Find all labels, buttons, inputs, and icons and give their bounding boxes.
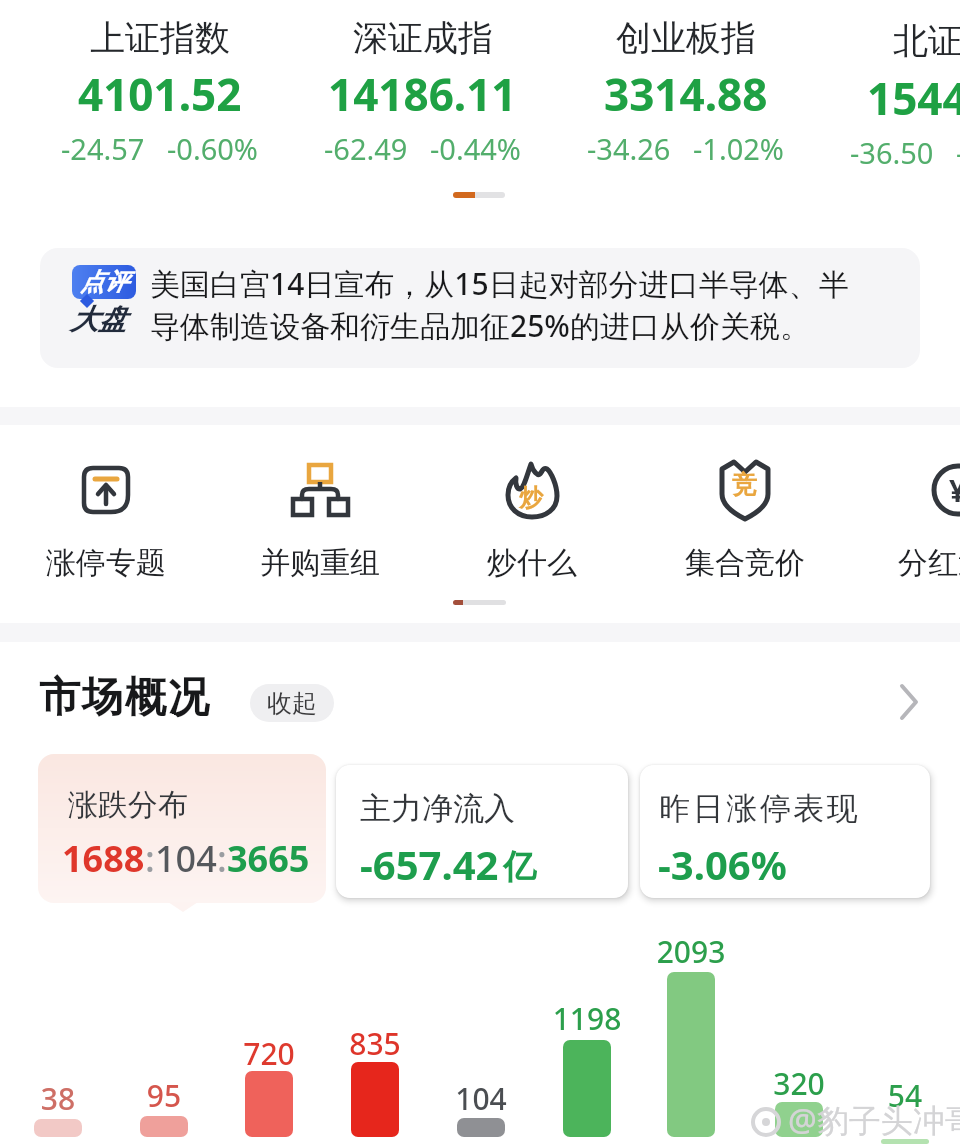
staticText: 炒什么 [487,544,577,582]
staticText: -0.60% [167,129,258,168]
button[interactable]: 点评 [40,248,920,368]
staticText: 104 [421,1078,541,1119]
staticText: 104 [155,834,217,883]
staticText: -0.44% [430,129,521,168]
staticText: -62.49 [324,129,408,168]
staticText: 并购重组 [260,544,380,582]
button[interactable]: 收起 [250,684,334,722]
staticText: -36.50 [850,133,934,172]
staticText: 上证指数 [90,16,230,60]
staticText: 涨跌分布 [68,786,188,824]
staticText: 分红送转 [898,544,960,582]
staticText: 昨日涨停表现 [658,789,859,828]
button[interactable]: 深证成指 [291,16,554,168]
staticText: 1198 [527,998,647,1039]
button[interactable] [896,682,922,722]
staticText: 720 [209,1033,329,1074]
staticText: 2093 [631,931,751,972]
staticText: ¥ [949,470,960,511]
button[interactable]: 炒 [442,458,622,582]
staticText: 1544.98 [867,68,960,128]
button[interactable]: 竞 [655,458,835,582]
staticText: 收起 [267,688,317,719]
staticText: 320 [739,1063,859,1104]
staticText: 美国白宫14日宣布，从15日起对部分进口半导体、半 [150,263,849,304]
staticText: 导体制造设备和衍生品加征25%的进口从价关税。 [150,305,810,346]
button[interactable]: 创业板指 [554,16,817,168]
staticText: 市场概况 [38,672,210,724]
staticText: -1.02% [693,129,784,168]
staticText: 北证50 [893,16,960,64]
button[interactable]: ¥ [868,458,960,582]
staticText: 835 [315,1023,435,1064]
button[interactable]: 上证指数 [28,16,291,168]
staticText: 竞 [732,469,757,500]
staticText: -24.57 [61,129,145,168]
staticText: @豹子头冲哥V [788,1098,960,1142]
staticText: -34.26 [587,129,671,168]
button[interactable]: 涨跌分布 [38,754,326,903]
staticText: 大盘 [70,302,126,337]
button[interactable]: 涨停专题 [16,458,196,582]
staticText: 深证成指 [353,16,493,60]
staticText: -657.42 [360,837,499,891]
staticText: 3665 [227,834,310,883]
button[interactable]: 北证50 [817,16,960,172]
staticText: -2.31% [956,133,960,172]
staticText: 点评 [80,267,128,297]
staticText: 95 [104,1075,224,1116]
staticText: : [217,834,227,883]
staticText: -3.06% [658,837,787,891]
button[interactable]: 并购重组 [230,458,410,582]
staticText: 创业板指 [616,16,756,60]
staticText: 14186.11 [328,64,517,124]
staticText: 1688 [62,834,145,883]
staticText: 54 [845,1075,960,1116]
staticText: 4101.52 [78,64,242,124]
staticText: 集合竞价 [685,544,805,582]
staticText: : [145,834,155,883]
staticText: 3314.88 [604,64,768,124]
staticText: 主力净流入 [360,789,515,828]
staticText: 38 [0,1078,118,1119]
staticText: 亿 [503,846,536,888]
button[interactable]: 昨日涨停表现 [640,765,930,898]
staticText: 炒 [519,483,543,513]
staticText: 涨停专题 [46,544,166,582]
button[interactable]: 主力净流入 [336,765,628,898]
